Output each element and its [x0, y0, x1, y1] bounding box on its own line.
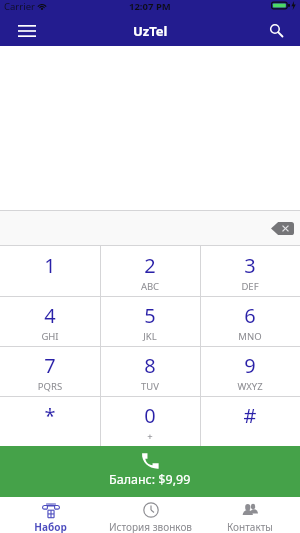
staticText: 1: [0, 252, 100, 274]
staticText: PQRS: [0, 380, 100, 392]
button[interactable]: 6: [200, 296, 300, 346]
staticText: Баланс: $9,99: [109, 471, 191, 488]
button[interactable]: 3: [200, 246, 300, 296]
button[interactable]: *: [0, 396, 100, 446]
staticText: 2: [100, 252, 200, 274]
button[interactable]: История звонков: [100, 497, 200, 533]
staticText: *: [0, 402, 100, 424]
staticText: 12:07 PM: [129, 0, 171, 11]
button[interactable]: 5: [100, 296, 200, 346]
button[interactable]: Menu: [0, 15, 48, 46]
button[interactable]: 7: [0, 346, 100, 396]
staticText: +: [100, 430, 200, 442]
button[interactable]: Баланс: $9,99: [0, 446, 300, 497]
staticText: 6: [200, 302, 300, 324]
staticText: 4: [0, 302, 100, 324]
staticText: ABC: [100, 280, 200, 292]
button[interactable]: 1: [0, 246, 100, 296]
staticText: JKL: [100, 330, 200, 342]
button[interactable]: #: [200, 396, 300, 446]
staticText: #: [200, 402, 300, 424]
button[interactable]: 8: [100, 346, 200, 396]
staticText: 5: [100, 302, 200, 324]
staticText: Набор: [34, 520, 67, 533]
staticText: Контакты: [227, 520, 273, 533]
staticText: 0: [100, 402, 200, 424]
staticText: 9: [200, 352, 300, 374]
button[interactable]: 4: [0, 296, 100, 346]
button[interactable]: Набор: [0, 497, 100, 533]
button[interactable]: Контакты: [200, 497, 300, 533]
staticText: TUV: [100, 380, 200, 392]
staticText: DEF: [200, 280, 300, 292]
staticText: MNO: [200, 330, 300, 342]
staticText: 8: [100, 352, 200, 374]
button[interactable]: 9: [200, 346, 300, 396]
staticText: История звонков: [109, 520, 192, 533]
button[interactable]: 2: [100, 246, 200, 296]
staticText: 7: [0, 352, 100, 374]
staticText: WXYZ: [200, 380, 300, 392]
staticText: UzTel: [133, 22, 168, 40]
staticText: Carrier: [4, 0, 35, 11]
button[interactable]: Search: [254, 15, 300, 46]
button[interactable]: 0: [100, 396, 200, 446]
staticText: 3: [200, 252, 300, 274]
staticText: GHI: [0, 330, 100, 342]
button[interactable]: Delete: [266, 215, 298, 241]
